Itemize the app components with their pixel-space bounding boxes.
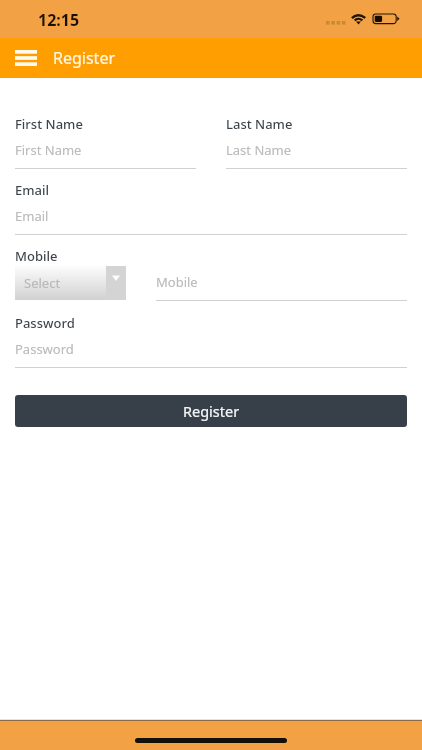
staticText: Password [15,314,75,332]
staticText: First Name [15,141,82,159]
button[interactable]: Mobile [156,269,407,301]
button[interactable]: First Name [15,137,196,169]
staticText: Mobile [15,247,58,265]
button[interactable]: Register [15,395,407,427]
staticText: Register [183,401,240,421]
staticText: Mobile [156,273,198,291]
staticText: Last Name [226,141,292,159]
button[interactable]: Email [15,203,407,235]
staticText: First Name [15,115,83,133]
staticText: Select [24,274,61,292]
button[interactable]: Open navigation menu [15,50,37,66]
staticText: Email [15,207,49,225]
staticText: 12:15 [38,9,80,31]
button[interactable]: Select [15,266,126,300]
staticText: Last Name [226,115,293,133]
button[interactable]: Password [15,336,407,368]
staticText: Password [15,340,74,358]
staticText: Register [53,47,116,69]
button[interactable]: Last Name [226,137,407,169]
staticText: Email [15,181,50,199]
